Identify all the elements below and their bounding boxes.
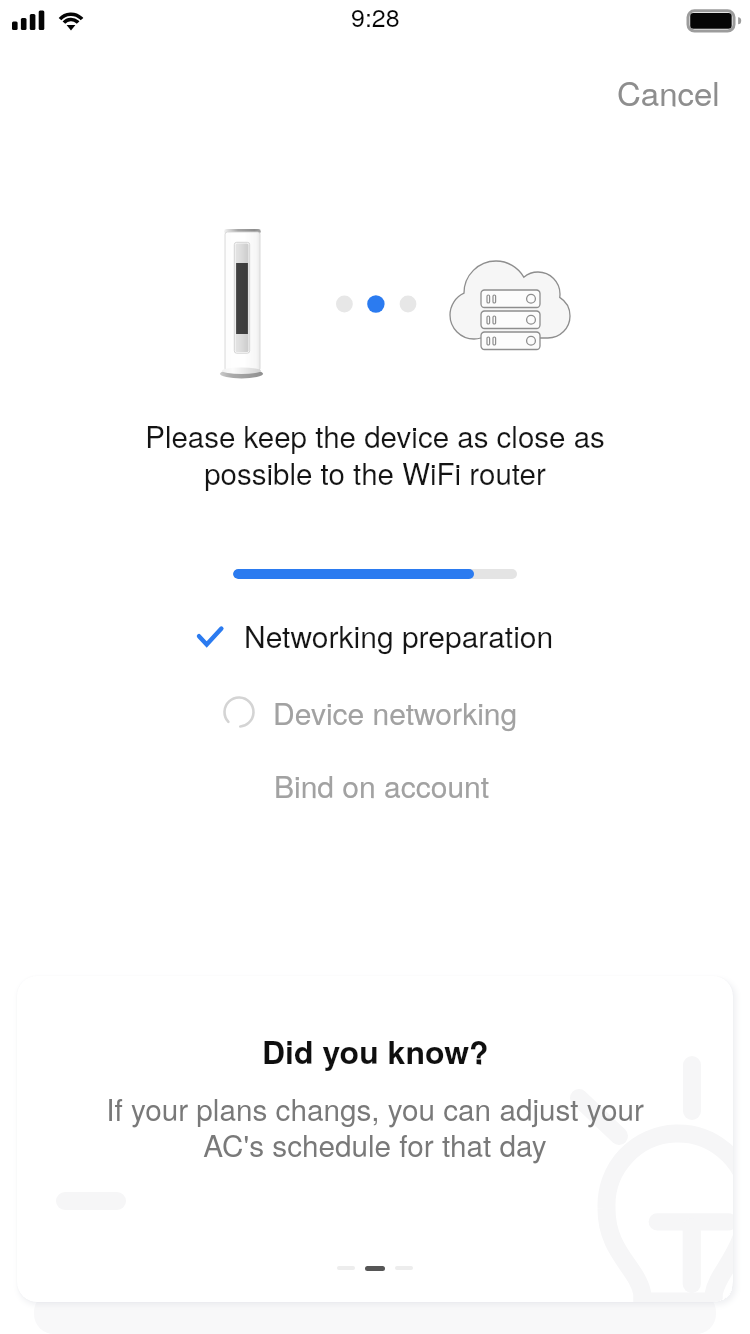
staticText: Bind on account xyxy=(274,764,490,807)
button[interactable]: Bind on account xyxy=(274,762,490,808)
staticText: Did you know? xyxy=(262,1028,489,1074)
staticText: 9:28 xyxy=(351,0,400,34)
staticText: Device networking xyxy=(273,691,518,734)
staticText: Cancel xyxy=(617,68,720,115)
button[interactable]: Cancel xyxy=(580,59,720,123)
staticText: Networking preparation xyxy=(244,614,554,657)
button[interactable]: Did you know? xyxy=(17,976,733,1302)
other: Air conditioner xyxy=(216,224,264,382)
other: Cloud server xyxy=(450,252,576,352)
button[interactable]: Device networking xyxy=(224,689,518,735)
button[interactable]: Networking preparation xyxy=(196,612,554,658)
staticText: If your plans changs, you can adjust you… xyxy=(106,1087,644,1165)
staticText: Please keep the device as close as possi… xyxy=(145,414,605,493)
